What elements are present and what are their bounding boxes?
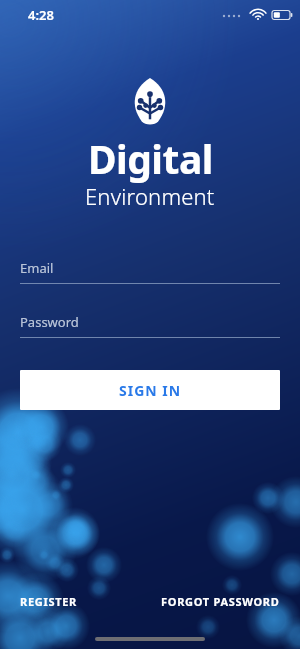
staticText: Email bbox=[20, 259, 54, 277]
staticText: Environment bbox=[85, 181, 215, 211]
staticText: SIGN IN bbox=[119, 381, 182, 400]
staticText: Digital bbox=[88, 132, 213, 185]
button[interactable]: SIGN IN bbox=[20, 370, 280, 410]
button[interactable]: Password bbox=[20, 313, 280, 338]
button[interactable]: REGISTER bbox=[20, 588, 78, 615]
button[interactable]: Email bbox=[20, 259, 280, 284]
staticText: 4:28 bbox=[28, 6, 54, 24]
staticText: FORGOT PASSWORD bbox=[161, 594, 280, 609]
staticText: REGISTER bbox=[20, 594, 78, 609]
button[interactable]: FORGOT PASSWORD bbox=[161, 588, 280, 615]
staticText: Password bbox=[20, 313, 79, 331]
